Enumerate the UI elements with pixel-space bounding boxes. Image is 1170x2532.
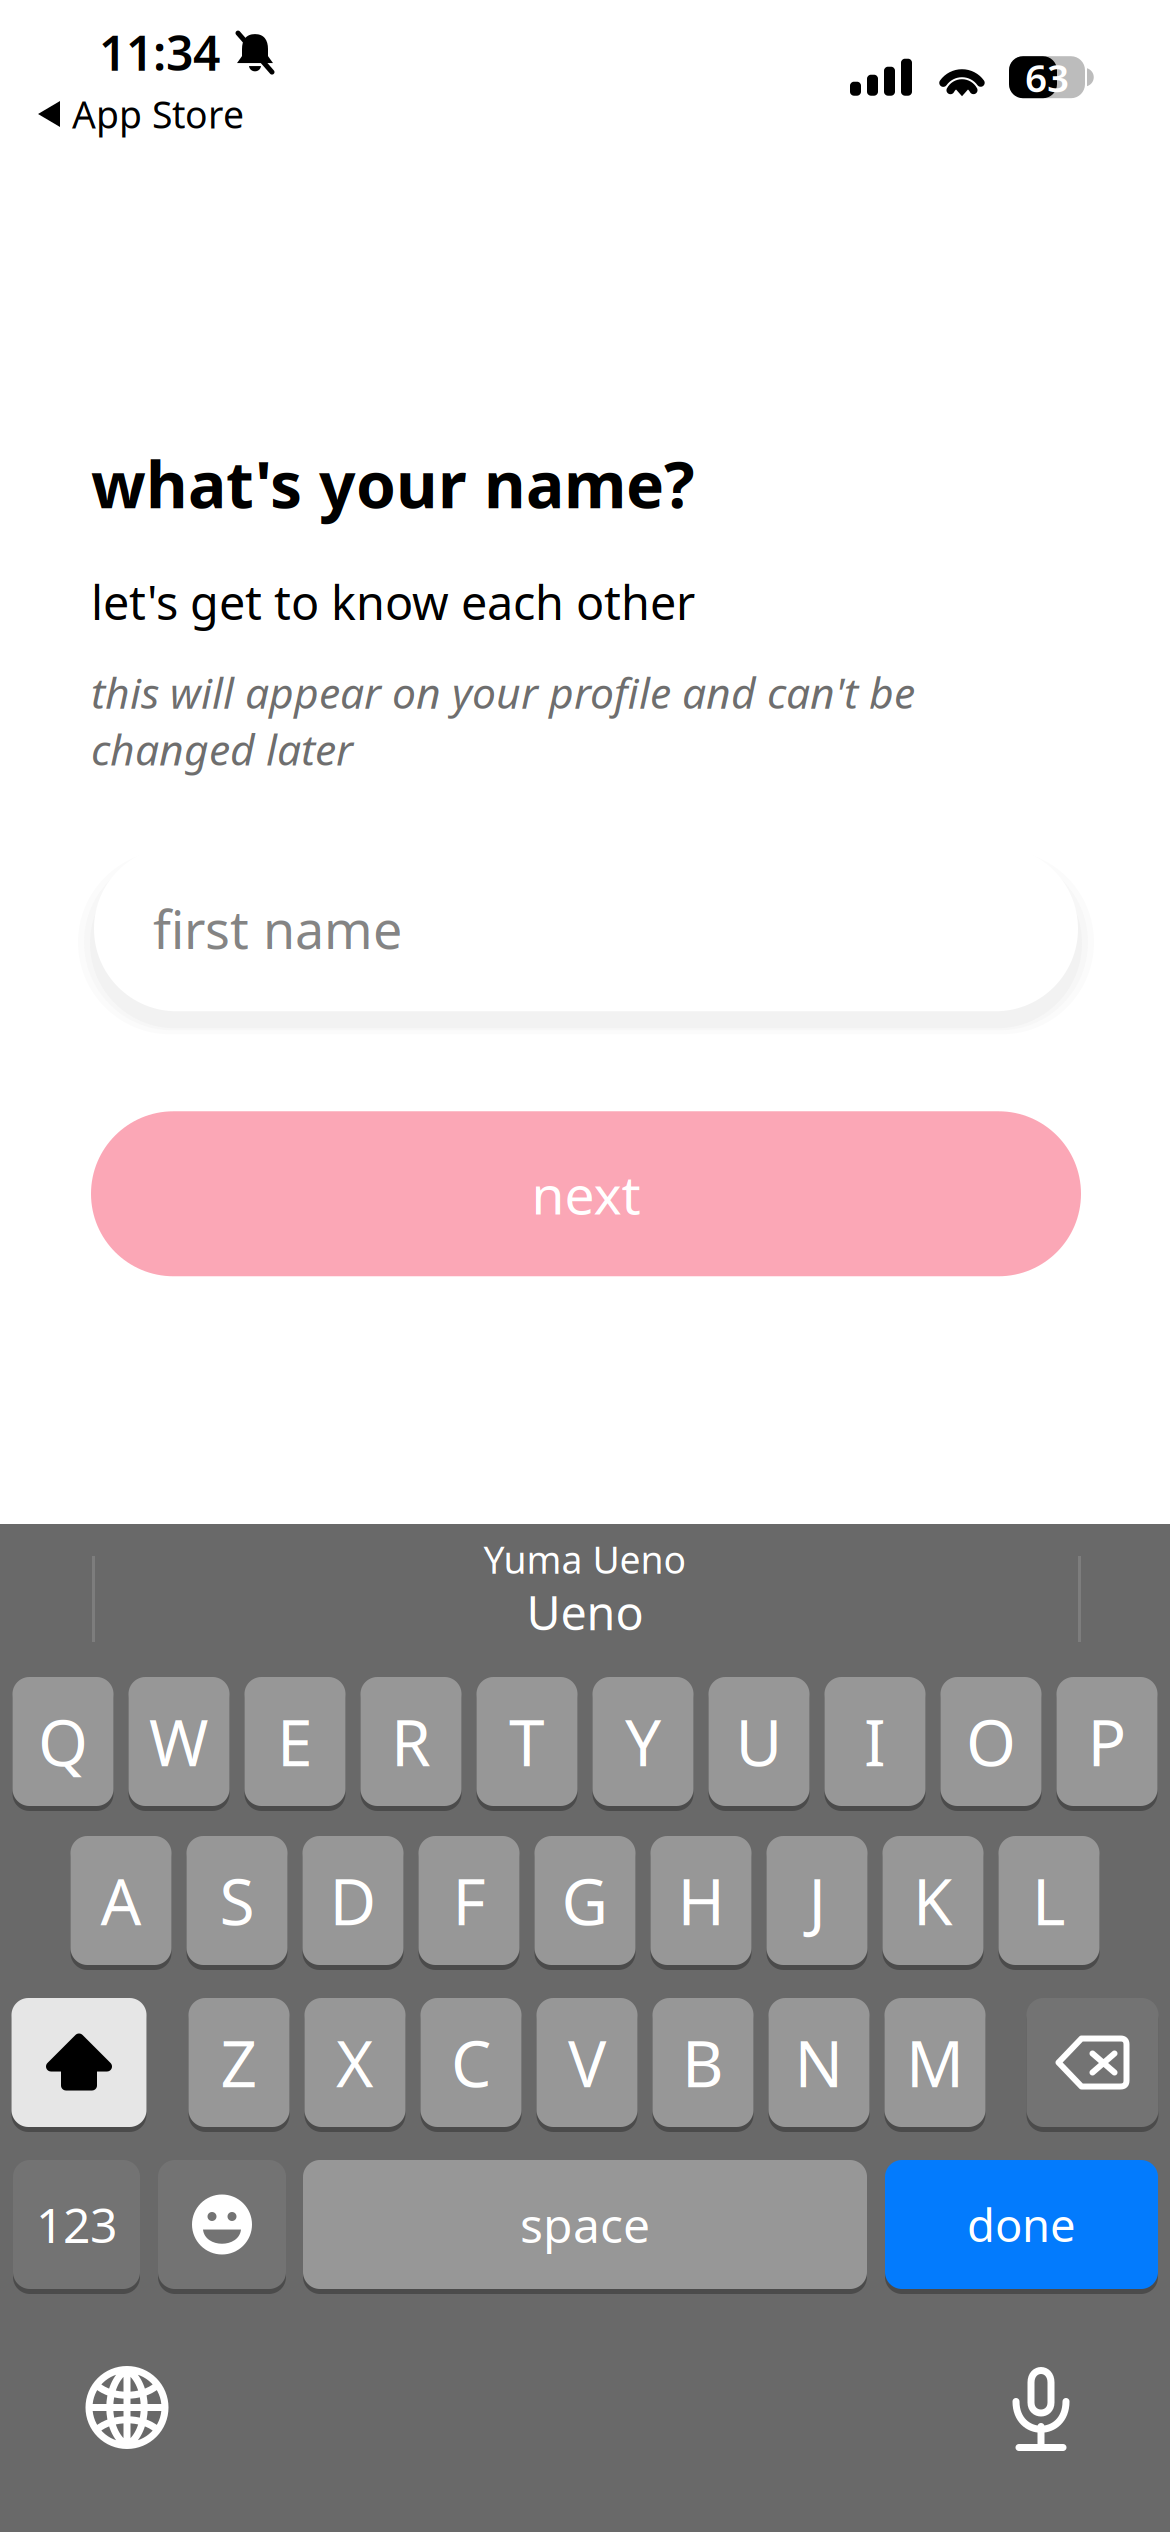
staticText: D [329,1858,376,1943]
staticText: first name [153,894,402,963]
staticText: S [219,1858,254,1943]
staticText: next [531,1158,640,1229]
button[interactable]: Dictation [1005,2360,1077,2454]
staticText: 11:34 [99,20,220,84]
staticText: I [864,1699,886,1784]
staticText: Q [38,1699,88,1784]
button[interactable]: S [186,1835,287,1970]
staticText: L [1032,1858,1066,1943]
button[interactable]: next [91,1111,1081,1276]
button[interactable]: P [1056,1676,1157,1811]
staticText: let's get to know each other [91,571,695,633]
staticText: what's your name? [91,441,695,526]
button[interactable]: G [534,1835,635,1970]
button[interactable]: W [128,1676,229,1811]
button[interactable]: K [882,1835,983,1970]
staticText: 123 [36,2193,117,2256]
button[interactable]: Q [12,1676,113,1811]
staticText: T [509,1699,545,1784]
staticText: W [149,1699,209,1784]
staticText: G [561,1858,608,1943]
staticText: A [100,1858,141,1943]
staticText: U [735,1699,782,1784]
button[interactable]: Shift [11,1997,146,2132]
staticText: J [808,1858,825,1943]
staticText: C [451,2020,491,2105]
staticText: 63 [1025,51,1069,103]
button[interactable]: space [303,2159,867,2294]
staticText: space [520,2193,650,2256]
button[interactable]: B [652,1997,753,2132]
button[interactable]: V [536,1997,637,2132]
staticText: E [277,1699,313,1784]
button[interactable]: App Store [32,81,250,147]
staticText: Yuma Ueno [483,1534,686,1584]
staticText: App Store [72,89,244,139]
staticText: M [906,2020,964,2105]
button[interactable]: F [418,1835,519,1970]
button[interactable]: C [420,1997,521,2132]
button[interactable]: U [708,1676,809,1811]
button[interactable]: Delete [1026,1997,1158,2132]
staticText: R [391,1699,431,1784]
button[interactable]: N [768,1997,869,2132]
button[interactable]: X [304,1997,405,2132]
staticText: Ueno [526,1581,643,1643]
button[interactable]: Y [592,1676,693,1811]
staticText: N [794,2020,843,2105]
staticText: done [967,2194,1076,2255]
button[interactable]: D [302,1835,403,1970]
staticText: Z [220,2020,257,2105]
staticText: X [336,2020,374,2105]
button[interactable]: A [70,1835,171,1970]
button[interactable]: Next keyboard [85,2365,169,2449]
staticText: V [568,2020,606,2105]
button[interactable]: 123 [13,2159,140,2294]
button[interactable]: J [766,1835,867,1970]
button[interactable]: O [940,1676,1041,1811]
staticText: F [452,1858,485,1943]
staticText: O [966,1699,1016,1784]
button[interactable]: T [476,1676,577,1811]
staticText: Y [625,1699,661,1784]
staticText: H [677,1858,724,1943]
button[interactable]: H [650,1835,751,1970]
button[interactable]: E [244,1676,345,1811]
staticText: K [913,1858,953,1943]
button[interactable]: Z [188,1997,289,2132]
button[interactable]: done [885,2159,1158,2294]
button[interactable]: L [998,1835,1099,1970]
button[interactable]: M [884,1997,985,2132]
button[interactable]: R [360,1676,461,1811]
staticText: B [682,2020,724,2105]
button[interactable]: Emoji [158,2159,286,2294]
button[interactable]: I [824,1676,925,1811]
staticText: P [1087,1699,1126,1784]
staticText: this will appear on your profile and can… [91,664,915,777]
